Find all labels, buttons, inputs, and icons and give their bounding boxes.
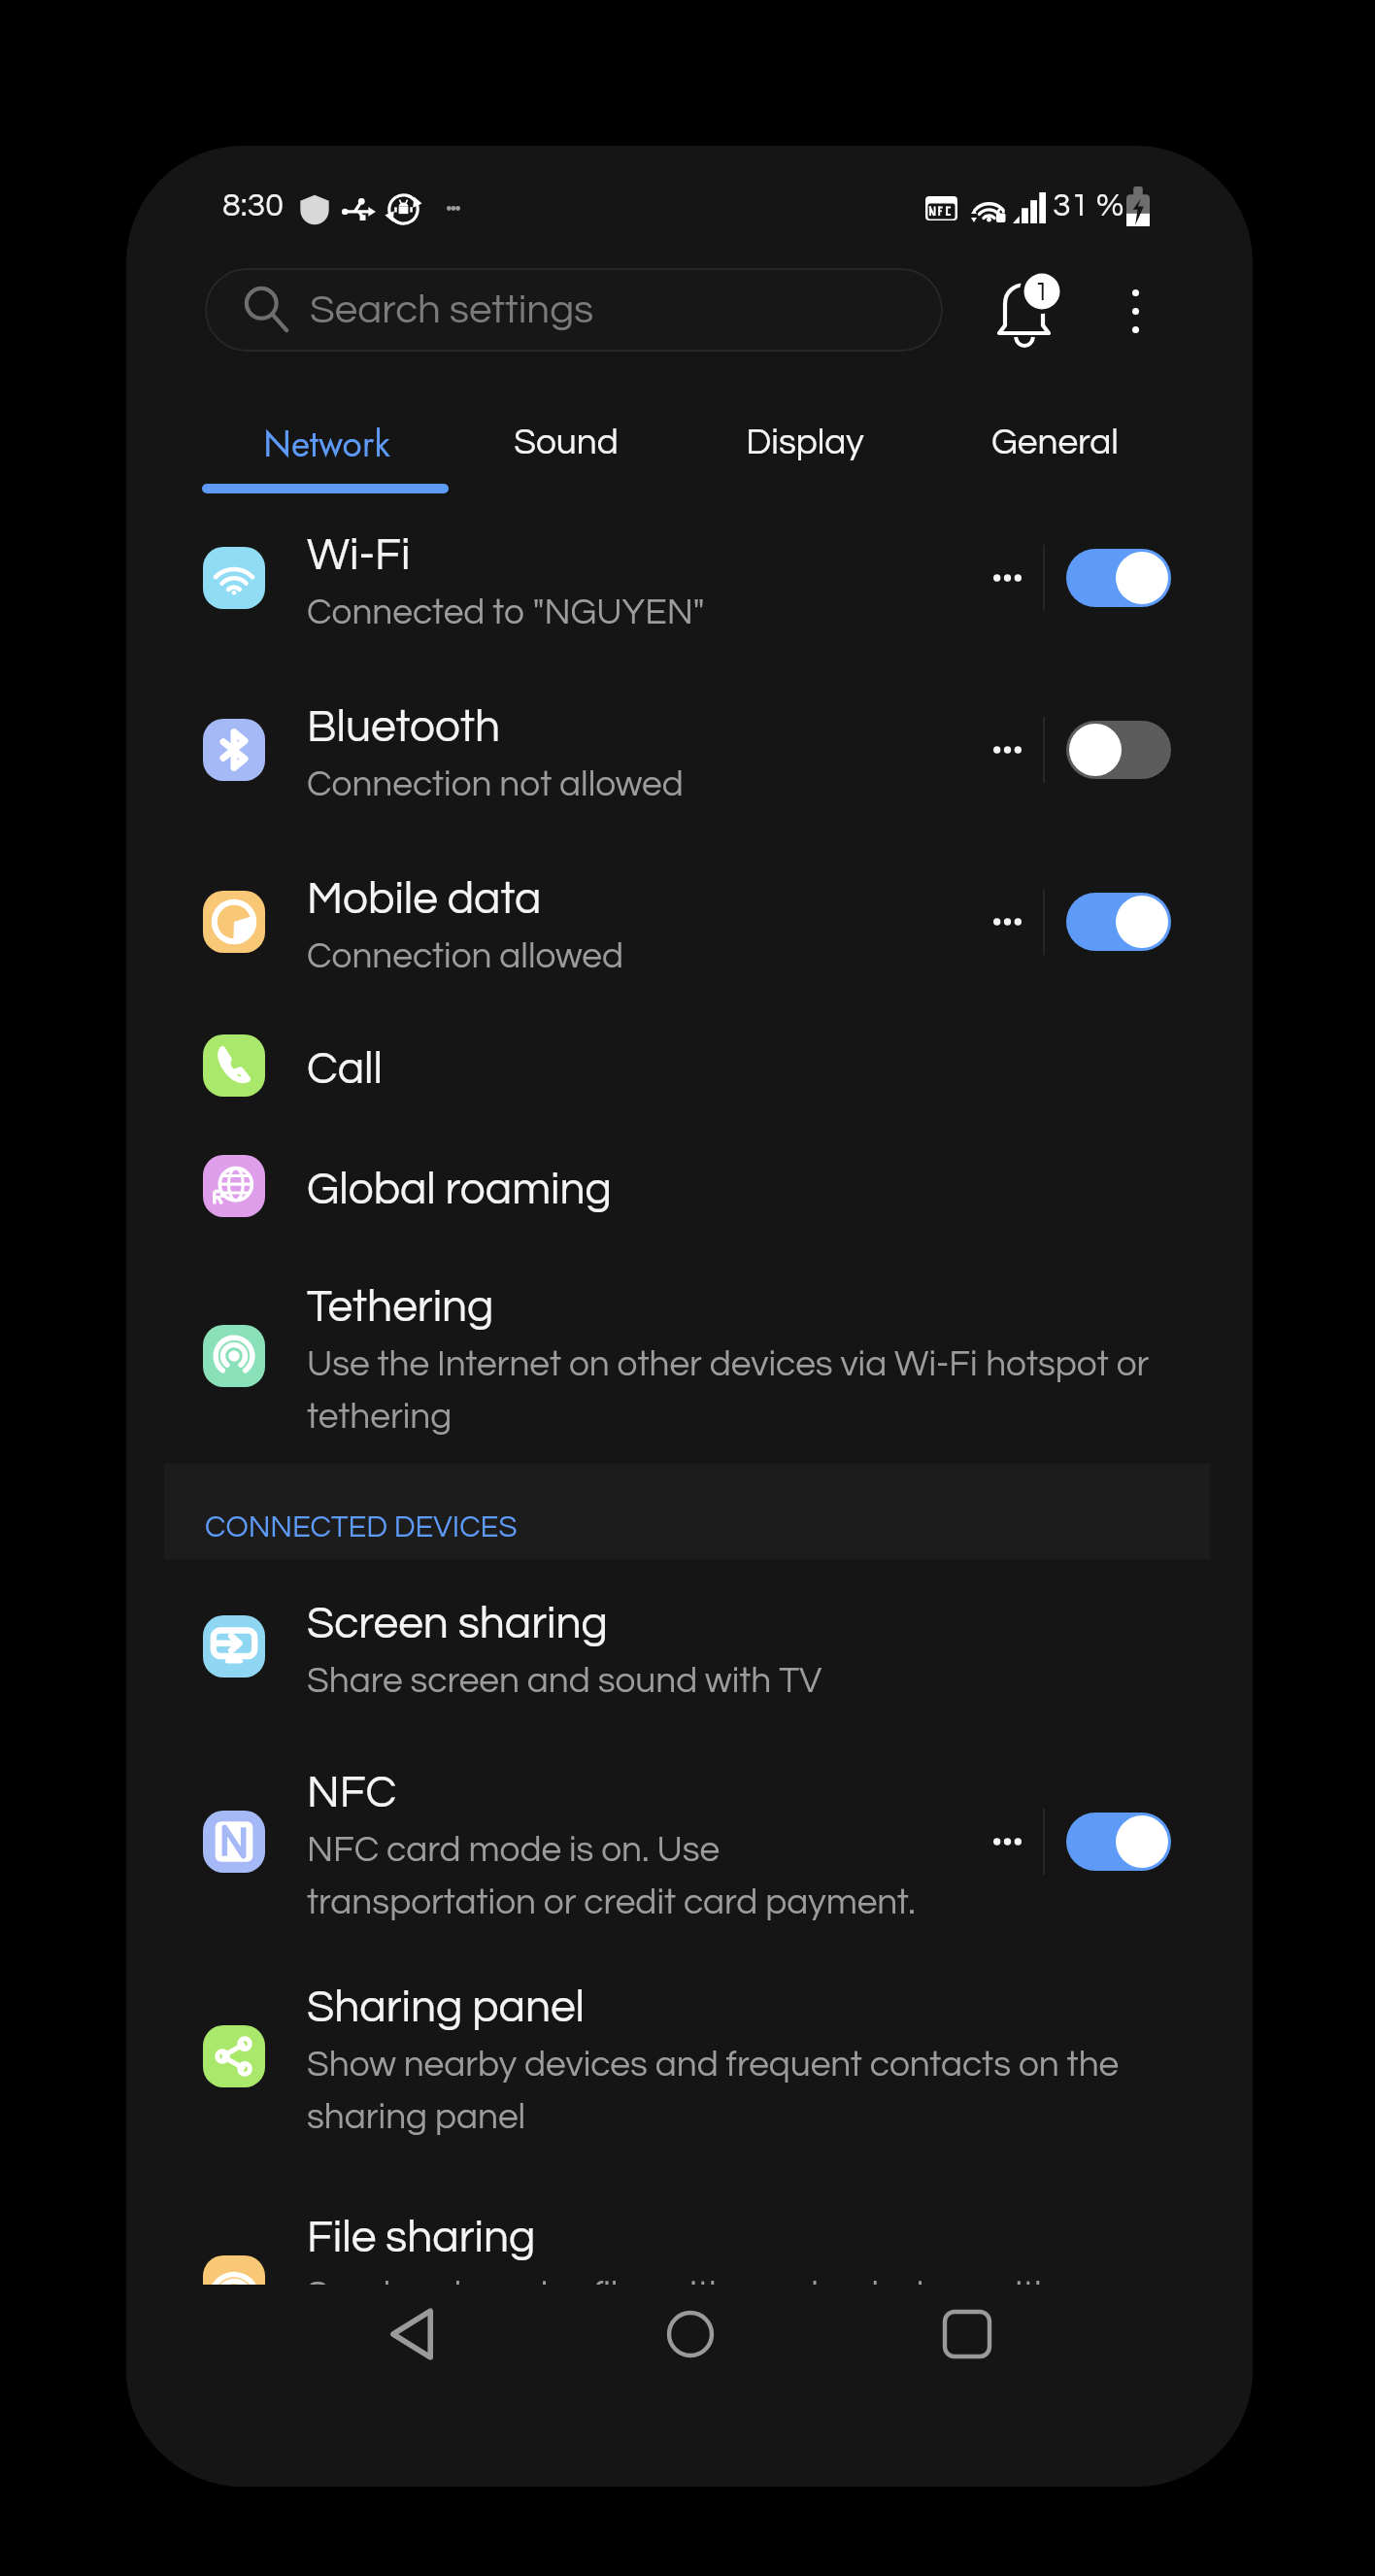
button[interactable]: Wi-Fi options — [971, 541, 1043, 615]
button[interactable]: Sharing panel — [126, 1950, 1253, 2162]
button[interactable]: Global roaming — [126, 1124, 1253, 1248]
staticText: 31 % — [1053, 188, 1124, 222]
staticText: General — [991, 424, 1119, 461]
button[interactable]: Notifications — [993, 273, 1100, 380]
staticText: CONNECTED DEVICES — [205, 1512, 518, 1543]
staticText: Call — [307, 1035, 383, 1096]
button[interactable]: Home — [552, 2285, 828, 2384]
button[interactable]: Bluetooth toggle — [1066, 721, 1171, 779]
staticText: Connection allowed — [307, 926, 623, 978]
button[interactable]: Display — [686, 389, 924, 497]
button[interactable]: NFC options — [971, 1805, 1043, 1879]
button[interactable]: Back — [274, 2285, 552, 2384]
staticText: Wi-Fi — [307, 522, 411, 582]
staticText: Use the Internet on other devices via Wi… — [307, 1334, 1194, 1439]
staticText: Display — [746, 424, 864, 461]
button[interactable]: Mobile data — [126, 835, 1253, 1007]
button[interactable]: Sound — [447, 389, 686, 497]
button[interactable]: Mobile data toggle — [1066, 893, 1171, 951]
button[interactable]: Call — [126, 1007, 1253, 1124]
staticText: NFC card mode is on. Use transportation … — [307, 1819, 948, 1924]
staticText: File sharing — [307, 2204, 536, 2264]
staticText: Show nearby devices and frequent contact… — [307, 2034, 1194, 2139]
button[interactable]: NFC — [126, 1733, 1253, 1950]
button[interactable]: Bluetooth options — [971, 713, 1043, 787]
staticText: Bluetooth — [307, 694, 500, 754]
staticText: Share screen and sound with TV — [307, 1650, 822, 1703]
staticText: Tethering — [307, 1273, 494, 1334]
staticText: Sharing panel — [307, 1974, 586, 2034]
button[interactable]: Recents — [828, 2285, 1105, 2384]
staticText: 1 — [1034, 278, 1050, 306]
staticText: Connected to "NGUYEN" — [307, 582, 705, 634]
staticText: Network — [263, 418, 390, 469]
button[interactable]: General — [935, 389, 1174, 497]
button[interactable]: Wi-Fi toggle — [1066, 549, 1171, 607]
button[interactable]: Screen sharing — [126, 1559, 1253, 1733]
staticText: Send and receive files with nearby devic… — [307, 2264, 1194, 2285]
button[interactable]: Network — [207, 389, 446, 497]
button[interactable]: Search settings — [205, 268, 943, 352]
staticText: Search settings — [310, 289, 594, 331]
button[interactable]: Mobile data options — [971, 885, 1043, 959]
button[interactable]: Bluetooth — [126, 663, 1253, 835]
staticText: Connection not allowed — [307, 754, 684, 806]
staticText: Global roaming — [307, 1156, 612, 1216]
staticText: Mobile data — [307, 865, 542, 926]
staticText: Sound — [514, 424, 619, 461]
staticText: NFC — [307, 1759, 397, 1819]
button[interactable]: More options — [1094, 270, 1176, 352]
button[interactable]: File sharing — [126, 2162, 1253, 2285]
button[interactable]: Wi-Fi — [126, 491, 1253, 663]
button[interactable]: NFC toggle — [1066, 1813, 1171, 1871]
staticText: Screen sharing — [307, 1590, 608, 1650]
button[interactable]: Tethering — [126, 1248, 1253, 1464]
staticText: 8:30 — [222, 188, 285, 222]
